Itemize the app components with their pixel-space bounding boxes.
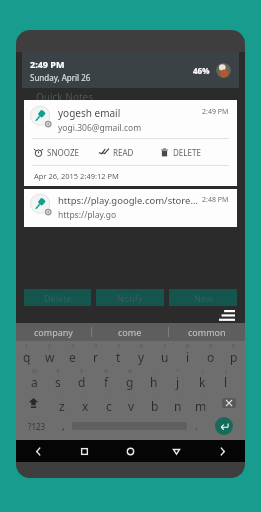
staticText: # xyxy=(56,367,60,374)
staticText: 6 xyxy=(140,342,144,349)
button[interactable]: Previous xyxy=(16,440,61,462)
staticText: 9 xyxy=(209,342,213,349)
button[interactable]: 2:49 PM xyxy=(22,52,239,88)
button[interactable]: + xyxy=(166,366,190,391)
staticText: d xyxy=(78,374,86,390)
staticText: Delete xyxy=(44,292,72,304)
staticText: f xyxy=(104,374,109,390)
button[interactable]: 7 xyxy=(153,341,176,366)
button[interactable]: common xyxy=(169,323,245,341)
button[interactable]: company xyxy=(16,323,91,341)
button[interactable]: 8 xyxy=(176,341,199,366)
button[interactable]: ?123 xyxy=(19,414,54,438)
button[interactable]: come xyxy=(92,323,168,341)
staticText: ) xyxy=(225,367,227,374)
staticText: a xyxy=(31,374,38,390)
staticText: g xyxy=(126,374,134,390)
button[interactable]: yogesh email xyxy=(24,100,237,186)
staticText: common xyxy=(188,326,226,338)
button[interactable]: ' xyxy=(74,391,97,414)
button[interactable]: ) xyxy=(214,366,238,391)
button[interactable]: ' xyxy=(50,391,74,414)
button[interactable]: 4 xyxy=(84,341,107,366)
button[interactable]: % xyxy=(94,366,118,391)
staticText: 1 xyxy=(25,342,29,349)
staticText: 7 xyxy=(163,342,167,349)
button[interactable]: SNOOZE xyxy=(34,139,99,165)
button[interactable]: ' xyxy=(166,391,189,414)
staticText: yogi.306@gmail.com xyxy=(58,122,142,134)
staticText: 2 xyxy=(48,342,52,349)
staticText: Notify xyxy=(117,292,143,304)
button[interactable]: 1 xyxy=(16,341,38,366)
staticText: yogesh email xyxy=(58,106,121,120)
staticText: 2:49 PM xyxy=(30,58,65,70)
staticText: 46% xyxy=(193,65,210,76)
staticText: j xyxy=(176,374,180,390)
button[interactable]: Back xyxy=(153,440,199,462)
button[interactable]: Profile xyxy=(216,63,231,78)
button[interactable]: ' xyxy=(120,391,143,414)
button[interactable]: # xyxy=(46,366,70,391)
staticText: Quick Notes xyxy=(36,90,93,104)
button[interactable]: 0 xyxy=(222,341,245,366)
button[interactable]: ' xyxy=(143,391,166,414)
staticText: ?123 xyxy=(28,421,46,432)
button[interactable]: 2 xyxy=(38,341,61,366)
staticText: SNOOZE xyxy=(47,147,79,158)
staticText: k xyxy=(199,374,206,390)
staticText: m xyxy=(195,398,207,414)
button[interactable]: Backspace xyxy=(212,391,245,414)
staticText: 0 xyxy=(232,342,236,349)
button[interactable]: ' xyxy=(189,391,212,414)
staticText: b xyxy=(151,398,159,414)
staticText: come xyxy=(118,326,142,338)
button[interactable]: READ xyxy=(99,139,160,165)
button[interactable]: Notify xyxy=(96,289,164,306)
button[interactable]: Shift xyxy=(16,391,50,414)
staticText: % xyxy=(104,367,109,374)
staticText: DELETE xyxy=(173,147,201,158)
staticText: i xyxy=(186,349,190,365)
button[interactable]: New xyxy=(169,289,237,306)
staticText: @ xyxy=(32,367,37,374)
button[interactable]: 5 xyxy=(107,341,130,366)
button[interactable]: Next xyxy=(199,440,245,462)
staticText: New xyxy=(194,292,213,304)
staticText: 3 xyxy=(71,342,75,349)
button[interactable]: ( xyxy=(190,366,214,391)
button[interactable]: DELETE xyxy=(160,139,227,165)
staticText: l xyxy=(224,374,228,390)
staticText: z xyxy=(59,398,65,414)
staticText: https://play.google.com/store… xyxy=(58,194,198,207)
button[interactable]: Home xyxy=(107,440,153,462)
button[interactable]: 6 xyxy=(130,341,153,366)
staticText: Apr 26, 2015 2:49:12 PM xyxy=(34,171,119,181)
staticText: p xyxy=(230,349,238,365)
button[interactable]: @ xyxy=(23,366,46,391)
button[interactable]: https://play.google.com/store… xyxy=(24,189,237,227)
button[interactable]: 9 xyxy=(199,341,222,366)
button[interactable]: & xyxy=(118,366,142,391)
button[interactable]: Delete xyxy=(24,289,91,306)
button[interactable]: ' xyxy=(97,391,120,414)
staticText: e xyxy=(69,349,76,365)
button[interactable]: Enter xyxy=(215,417,233,435)
button[interactable]: Recents xyxy=(61,440,107,462)
staticText: y xyxy=(138,349,145,365)
staticText: & xyxy=(128,367,133,374)
button[interactable]: $ xyxy=(70,366,94,391)
staticText: c xyxy=(106,398,112,414)
button[interactable]: - xyxy=(142,366,166,391)
button[interactable]: 3 xyxy=(61,341,84,366)
staticText: . xyxy=(195,419,198,433)
